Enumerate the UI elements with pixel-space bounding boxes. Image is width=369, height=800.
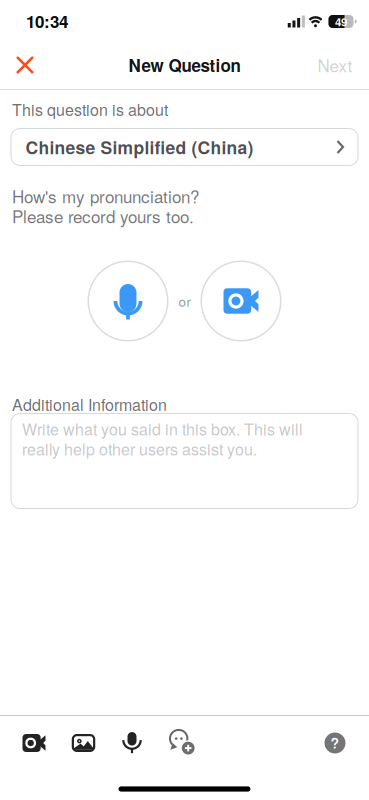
button[interactable]: Add question details (164, 725, 200, 761)
staticText: New Question (128, 53, 240, 77)
staticText: Please record yours too. (12, 204, 194, 228)
button[interactable]: Record video (200, 260, 281, 341)
staticText: really help other users assist you. (22, 437, 257, 460)
staticText: 10:34 (26, 9, 68, 33)
button[interactable]: Chinese Simplified (China) (10, 128, 358, 166)
staticText: Chinese Simplified (China) (25, 135, 253, 159)
staticText: ? (330, 733, 339, 753)
staticText: Next (317, 53, 352, 77)
button[interactable]: Close (10, 50, 40, 80)
staticText: or (178, 292, 190, 310)
button[interactable]: Attach video (17, 726, 51, 760)
button[interactable]: Next (310, 50, 360, 80)
button[interactable]: Help (320, 728, 350, 758)
staticText: How's my pronunciation? (12, 184, 199, 208)
staticText: 49 (335, 13, 347, 30)
button[interactable]: Record audio (87, 260, 168, 341)
button[interactable]: Attach photo (66, 726, 100, 760)
staticText: This question is about (12, 98, 168, 120)
button[interactable]: Record audio (115, 726, 149, 760)
staticText: Write what you said in this box. This wi… (22, 417, 303, 440)
staticText: Additional Information (12, 393, 167, 415)
